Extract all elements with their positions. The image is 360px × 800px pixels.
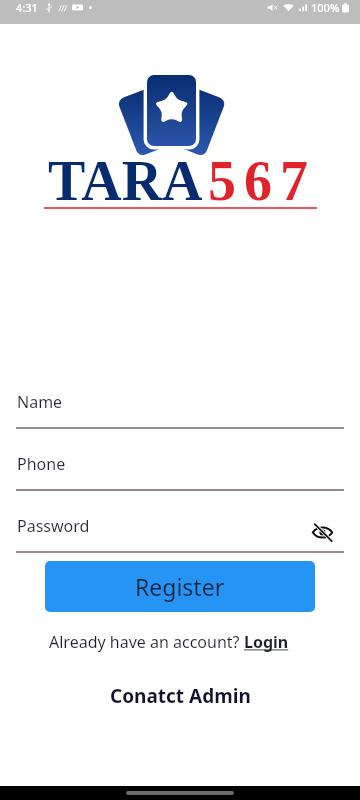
- staticText: 100%: [311, 0, 340, 15]
- staticText: Login: [244, 631, 289, 653]
- staticText: Name: [17, 391, 63, 413]
- staticText: Already have an account?: [49, 631, 244, 653]
- staticText: Phone: [17, 453, 66, 475]
- button[interactable]: Register: [45, 561, 315, 612]
- staticText: 567: [204, 150, 312, 212]
- button[interactable]: Login: [244, 631, 289, 653]
- staticText: Register: [135, 571, 225, 602]
- staticText: TARA: [48, 150, 203, 212]
- button[interactable]: Conatct Admin: [110, 683, 251, 709]
- staticText: Conatct Admin: [110, 683, 251, 709]
- staticText: 4:31: [16, 0, 38, 15]
- staticText: Password: [17, 515, 90, 537]
- button[interactable]: Toggle password visibility: [311, 521, 333, 543]
